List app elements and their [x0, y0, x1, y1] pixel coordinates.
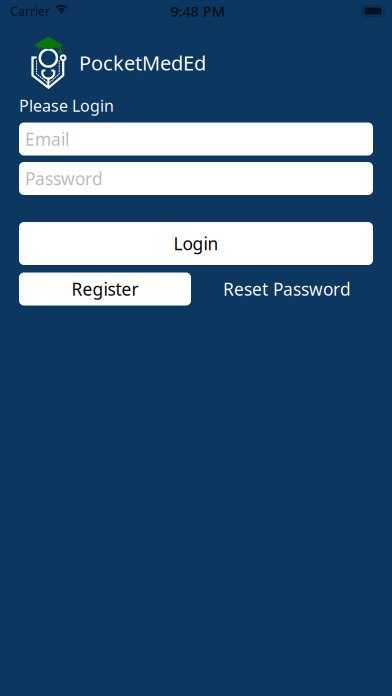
button[interactable]: Login	[19, 222, 373, 265]
button[interactable]: PocketMedEd	[79, 49, 206, 76]
staticText: Email	[25, 127, 69, 150]
staticText: PocketMedEd	[79, 49, 206, 76]
staticText: Carrier	[10, 3, 50, 19]
staticText: Login	[173, 232, 218, 255]
staticText: Reset Password	[223, 277, 351, 300]
staticText: 9:48 PM	[170, 1, 225, 21]
staticText: Please Login	[19, 95, 114, 116]
button[interactable]: Register	[19, 272, 191, 305]
staticText: Password	[25, 167, 103, 190]
staticText: Register	[71, 277, 138, 300]
button[interactable]: Reset Password	[219, 272, 355, 305]
